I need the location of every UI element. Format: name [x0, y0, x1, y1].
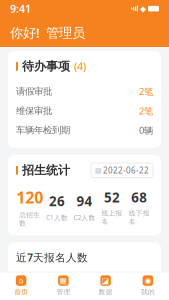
button[interactable]: 车辆年检到期 [16, 120, 153, 140]
staticText: 94 [76, 192, 92, 210]
staticText: 线下报名 [129, 209, 150, 225]
staticText: 近7天报名人数 [16, 250, 88, 264]
button[interactable]: ◪ [84, 275, 127, 296]
staticText: 160 [17, 271, 26, 278]
staticText: C1人数 [46, 213, 68, 222]
staticText: 维保审批 [16, 105, 52, 117]
staticText: C2人数 [73, 213, 95, 222]
staticText: ▤ [95, 166, 101, 174]
staticText: 线上报名 [101, 209, 122, 225]
staticText: 68 [131, 188, 147, 206]
staticText: 2022-06-22 [103, 165, 149, 176]
staticText: ◆ [140, 4, 146, 13]
staticText: 数据 [99, 288, 113, 296]
staticText: 待办事项 [22, 59, 70, 74]
staticText: ▦ [59, 276, 67, 285]
staticText: 总招生数 [19, 211, 40, 227]
staticText: 招生统计 [22, 163, 70, 178]
staticText: 首页 [14, 288, 28, 296]
staticText: (4) [74, 59, 86, 73]
staticText: 2笔 [139, 105, 153, 117]
staticText: ⌂ [19, 276, 24, 285]
button[interactable]: ▦ [42, 275, 84, 296]
staticText: 请假审批 [16, 86, 52, 97]
staticText: 52 [104, 188, 120, 206]
staticText: 9:41 [10, 2, 31, 16]
staticText: ◉ [144, 276, 151, 285]
button[interactable]: ⌂ [0, 275, 42, 296]
button[interactable]: 维保审批 [16, 101, 153, 120]
button[interactable]: ▤ [91, 163, 153, 178]
staticText: 车辆年检到期 [16, 124, 70, 136]
staticText: 2笔 [139, 85, 153, 98]
staticText: 120 [16, 187, 43, 208]
staticText: 140 [17, 278, 26, 285]
staticText: 你好! 管理员 [10, 24, 85, 41]
staticText: 100 [17, 293, 26, 300]
staticText: 管理 [56, 288, 70, 296]
button[interactable]: 请假审批 [16, 82, 153, 101]
staticText: 我的 [141, 288, 155, 296]
button[interactable]: ◉ [127, 275, 169, 296]
staticText: 26 [49, 192, 65, 210]
staticText: 0辆 [139, 124, 153, 136]
staticText: 120 [17, 286, 26, 293]
staticText: ◪ [102, 276, 110, 285]
